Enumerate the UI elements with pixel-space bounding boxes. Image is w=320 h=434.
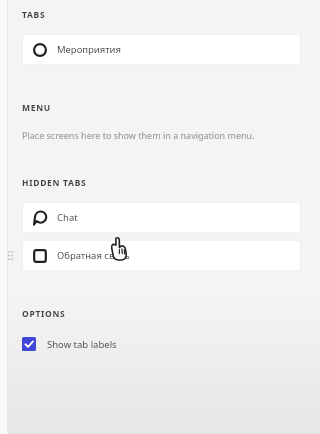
other: Reorder bbox=[7, 250, 14, 261]
staticText: Chat bbox=[57, 211, 78, 224]
button[interactable]: Обратная связь bbox=[22, 240, 301, 271]
other: Show tab labels checkbox bbox=[22, 337, 36, 351]
button[interactable]: Chat bbox=[22, 202, 301, 233]
staticText: Мероприятия bbox=[57, 43, 121, 56]
staticText: Place screens here to show them in a nav… bbox=[22, 129, 255, 141]
staticText: Обратная связь bbox=[57, 249, 130, 262]
staticText: Show tab labels bbox=[47, 338, 117, 351]
staticText: HIDDEN TABS bbox=[22, 177, 87, 189]
staticText: OPTIONS bbox=[22, 308, 66, 320]
button[interactable]: Мероприятия bbox=[22, 34, 301, 65]
button[interactable]: Show tab labels checkbox bbox=[22, 337, 121, 351]
staticText: TABS bbox=[22, 9, 46, 21]
staticText: MENU bbox=[22, 102, 51, 114]
